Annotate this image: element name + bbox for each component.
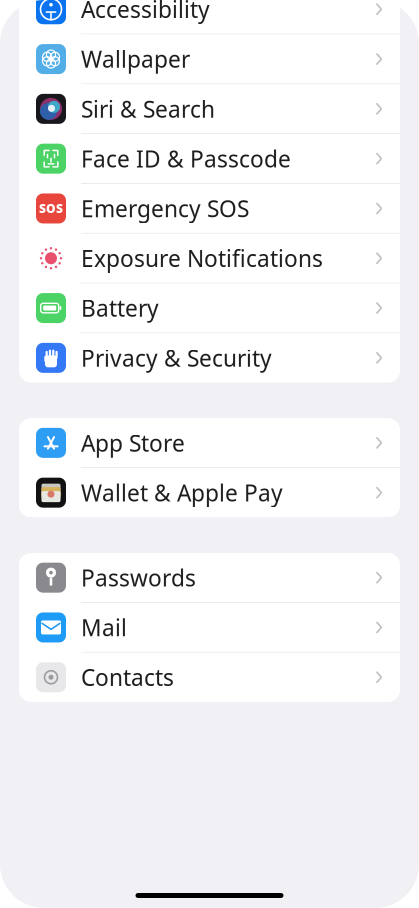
staticText: Wallpaper [81, 44, 190, 74]
staticText: Face ID & Passcode [81, 144, 291, 174]
staticText: Emergency SOS [81, 193, 249, 223]
button[interactable]: Exposure Notifications [19, 234, 400, 283]
button[interactable]: Accessibility [19, 0, 400, 34]
staticText: Siri & Search [81, 94, 215, 124]
button[interactable]: Mail [19, 603, 400, 652]
staticText: Mail [81, 612, 127, 642]
staticText: Contacts [81, 662, 174, 692]
button[interactable]: Privacy & Security [19, 333, 400, 382]
staticText: Exposure Notifications [81, 243, 323, 273]
button[interactable]: Face ID & Passcode [19, 134, 400, 183]
button[interactable]: Contacts [19, 653, 400, 702]
button[interactable]: Wallpaper [19, 34, 400, 83]
staticText: Accessibility [81, 0, 210, 24]
staticText: App Store [81, 428, 185, 458]
button[interactable]: SOS [19, 184, 400, 233]
staticText: Privacy & Security [81, 343, 272, 373]
button[interactable]: Passwords [19, 553, 400, 602]
button[interactable]: Battery [19, 283, 400, 332]
staticText: Wallet & Apple Pay [81, 478, 283, 508]
button[interactable]: Wallet & Apple Pay [19, 468, 400, 517]
button[interactable]: App Store [19, 418, 400, 467]
button[interactable]: Siri & Search [19, 84, 400, 133]
staticText: Passwords [81, 563, 196, 593]
staticText: Battery [81, 293, 159, 323]
staticText: SOS [39, 200, 63, 216]
